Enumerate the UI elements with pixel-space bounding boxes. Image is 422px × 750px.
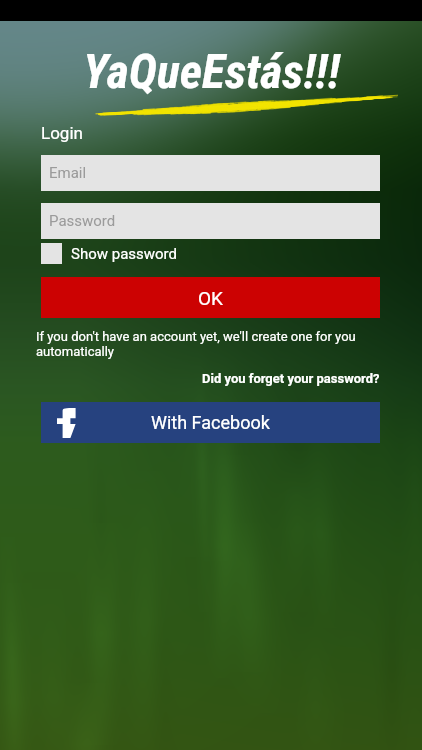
staticText: Show password: [71, 245, 178, 263]
button[interactable]: Did you forget your password?: [202, 371, 380, 386]
staticText: With Facebook: [151, 412, 270, 433]
staticText: If you don't have an account yet, we'll …: [36, 329, 361, 359]
button[interactable]: Email: [41, 155, 380, 191]
button[interactable]: Show password: [41, 243, 178, 264]
button[interactable]: OK: [41, 277, 380, 318]
button[interactable]: Password: [41, 203, 380, 239]
staticText: Email: [49, 164, 87, 182]
staticText: OK: [198, 287, 223, 309]
button[interactable]: With Facebook: [41, 402, 380, 443]
staticText: Login: [41, 123, 83, 143]
staticText: YaQueEstás!!!: [83, 43, 340, 99]
staticText: Password: [49, 212, 116, 230]
